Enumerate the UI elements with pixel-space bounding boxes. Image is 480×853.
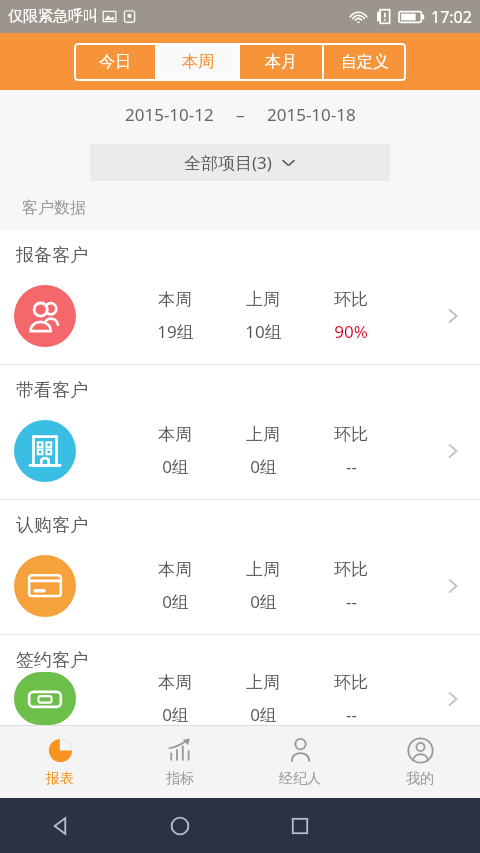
staticText: 带看客户: [16, 379, 88, 402]
button[interactable]: 带看客户: [0, 365, 480, 499]
staticText: --: [346, 590, 357, 613]
staticText: 全部项目(3): [184, 151, 272, 174]
staticText: 0组: [162, 455, 189, 478]
staticText: 0组: [250, 703, 277, 725]
staticText: 0组: [162, 703, 189, 725]
staticText: 90%: [334, 320, 368, 343]
staticText: 19组: [157, 320, 194, 343]
button[interactable]: 认购客户: [0, 500, 480, 634]
staticText: 本周: [158, 672, 192, 693]
button[interactable]: 全部项目(3): [90, 144, 390, 181]
staticText: 10组: [245, 320, 282, 343]
button[interactable]: 本周: [157, 43, 238, 81]
staticText: 2015-10-12: [125, 103, 214, 126]
staticText: 0组: [250, 590, 277, 613]
button[interactable]: 2015-10-12: [0, 90, 480, 138]
staticText: 认购客户: [16, 514, 88, 537]
button[interactable]: 本月: [240, 43, 322, 81]
button[interactable]: 我的: [360, 726, 480, 798]
staticText: –: [236, 103, 245, 126]
staticText: 报表: [46, 770, 74, 788]
button[interactable]: 签约客户: [0, 635, 480, 725]
staticText: 自定义: [341, 52, 389, 72]
staticText: 客户数据: [22, 198, 86, 218]
staticText: 17:02: [431, 6, 472, 28]
staticText: 我的: [406, 770, 434, 788]
staticText: 本周: [182, 52, 214, 72]
staticText: --: [346, 703, 357, 725]
button[interactable]: 报备客户: [0, 230, 480, 364]
other: 查看详情: [442, 440, 464, 462]
staticText: 今日: [99, 52, 131, 72]
staticText: 本月: [265, 52, 297, 72]
button[interactable]: 自定义: [324, 43, 406, 81]
staticText: 环比: [334, 672, 368, 693]
staticText: 0组: [162, 590, 189, 613]
button[interactable]: 指标: [120, 726, 240, 798]
staticText: 报备客户: [16, 244, 88, 267]
staticText: 上周: [246, 559, 280, 580]
staticText: 上周: [246, 424, 280, 445]
staticText: 本周: [158, 424, 192, 445]
staticText: 签约客户: [16, 649, 88, 672]
staticText: 环比: [334, 559, 368, 580]
staticText: 环比: [334, 424, 368, 445]
staticText: 本周: [158, 559, 192, 580]
other: 查看详情: [442, 575, 464, 597]
staticText: 上周: [246, 289, 280, 310]
other: 查看详情: [442, 688, 464, 710]
button[interactable]: 今日: [74, 43, 155, 81]
staticText: --: [346, 455, 357, 478]
staticText: 环比: [334, 289, 368, 310]
staticText: 0组: [250, 455, 277, 478]
button[interactable]: 返回: [0, 798, 120, 853]
button[interactable]: 报表: [0, 726, 120, 798]
staticText: 本周: [158, 289, 192, 310]
button[interactable]: 经纪人: [240, 726, 360, 798]
staticText: 指标: [166, 770, 194, 788]
staticText: 经纪人: [279, 770, 321, 788]
staticText: 上周: [246, 672, 280, 693]
staticText: 2015-10-18: [267, 103, 356, 126]
button[interactable]: 主屏幕: [120, 798, 240, 853]
staticText: 仅限紧急呼叫: [8, 7, 98, 26]
button[interactable]: 最近任务: [240, 798, 360, 853]
other: 查看详情: [442, 305, 464, 327]
